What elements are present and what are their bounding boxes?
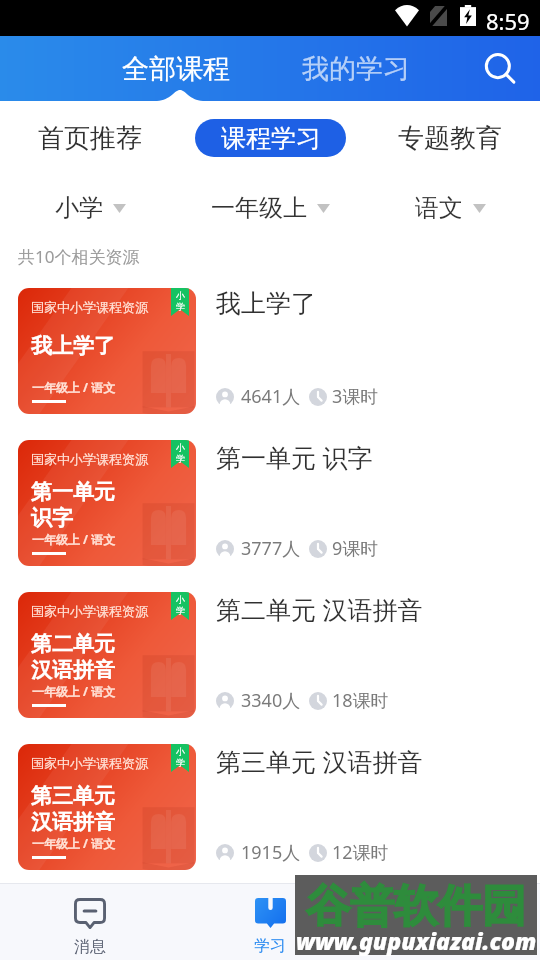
button[interactable]: 学习: [180, 884, 360, 960]
staticText: www.gupuxiazai.com: [296, 925, 537, 956]
staticText: 我的: [434, 937, 466, 957]
staticText: 国家中小学课程资源: [31, 451, 148, 467]
staticText: 全部课程: [122, 52, 230, 86]
staticText: 国家中小学课程资源: [31, 755, 148, 771]
staticText: 18课时: [332, 688, 389, 713]
staticText: 国家中小学课程资源: [31, 299, 148, 315]
staticText: 第一单元: [31, 479, 115, 505]
staticText: 小: [176, 442, 185, 453]
staticText: 一年级上 / 语文: [32, 835, 116, 851]
staticText: 第三单元 汉语拼音: [216, 744, 423, 778]
staticText: 我上学了: [216, 288, 316, 319]
button[interactable]: 课程学习: [195, 119, 346, 157]
staticText: 学习: [254, 936, 286, 956]
staticText: 谷普软件园: [306, 879, 526, 934]
staticText: 汉语拼音: [31, 657, 115, 683]
button[interactable]: 国家中小学课程资源: [0, 427, 540, 579]
staticText: 第二单元 汉语拼音: [216, 592, 423, 626]
staticText: 国家中小学课程资源: [31, 603, 148, 619]
staticText: 共10个相关资源: [18, 245, 140, 268]
button[interactable]: 小学: [47, 183, 134, 233]
button[interactable]: 一年级上: [203, 183, 338, 233]
staticText: 3课时: [332, 384, 379, 409]
staticText: 一年级上 / 语文: [32, 531, 116, 547]
staticText: 识字: [31, 505, 73, 531]
staticText: 专题教育: [398, 122, 502, 155]
button[interactable]: 全部课程: [108, 36, 244, 101]
button[interactable]: 消息: [0, 884, 180, 960]
staticText: 学: [176, 453, 185, 464]
staticText: 我上学了: [31, 333, 115, 359]
staticText: 学: [176, 757, 185, 768]
staticText: 3340人: [241, 688, 301, 713]
button[interactable]: 专题教育: [360, 101, 540, 175]
staticText: 第一单元 识字: [216, 440, 373, 474]
staticText: 3777人: [241, 536, 301, 561]
staticText: 一年级上 / 语文: [32, 379, 116, 395]
button[interactable]: 首页推荐: [0, 101, 180, 175]
staticText: 一年级上: [211, 193, 307, 223]
staticText: 小: [176, 290, 185, 301]
button[interactable]: 我的学习: [288, 36, 424, 101]
staticText: 学: [176, 301, 185, 312]
staticText: 消息: [74, 937, 106, 957]
staticText: 小: [176, 746, 185, 757]
staticText: 第三单元: [31, 783, 115, 809]
staticText: 8:59: [486, 6, 530, 36]
staticText: 一年级上 / 语文: [32, 683, 116, 699]
staticText: 课程学习: [221, 123, 321, 154]
staticText: 小: [176, 594, 185, 605]
staticText: 9课时: [332, 536, 379, 561]
staticText: 学: [176, 605, 185, 616]
staticText: 小学: [55, 193, 103, 223]
staticText: 语文: [415, 193, 463, 223]
staticText: 12课时: [332, 840, 389, 865]
staticText: 1915人: [241, 840, 301, 865]
button[interactable]: 国家中小学课程资源: [0, 731, 540, 883]
staticText: 4641人: [241, 384, 301, 409]
button[interactable]: Search: [476, 45, 524, 93]
staticText: 首页推荐: [38, 122, 142, 155]
button[interactable]: 国家中小学课程资源: [0, 579, 540, 731]
button[interactable]: 语文: [407, 183, 494, 233]
staticText: 汉语拼音: [31, 809, 115, 835]
staticText: 第二单元: [31, 631, 115, 657]
button[interactable]: 我的: [360, 884, 540, 960]
button[interactable]: 国家中小学课程资源: [0, 275, 540, 427]
staticText: 我的学习: [302, 52, 410, 86]
